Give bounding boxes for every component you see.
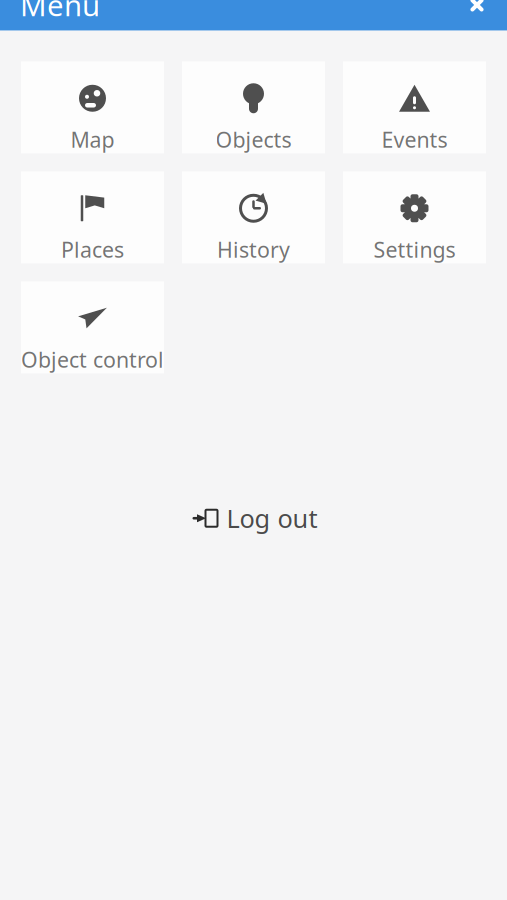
button[interactable]: Places [21,171,164,263]
button[interactable]: Events [343,61,486,153]
button[interactable]: Close [455,0,499,27]
button[interactable]: History [182,171,325,263]
button[interactable]: Log out [175,493,331,543]
staticText: Places [61,235,124,264]
staticText: Map [70,125,114,154]
staticText: History [217,235,290,264]
staticText: Log out [226,501,317,535]
button[interactable]: Objects [182,61,325,153]
staticText: Settings [373,235,455,264]
staticText: Objects [215,125,291,154]
button[interactable]: Map [21,61,164,153]
button[interactable]: Settings [343,171,486,263]
staticText: Object control [21,345,164,374]
staticText: Menu [20,0,100,24]
staticText: Events [381,125,447,154]
button[interactable]: Object control [21,281,164,373]
